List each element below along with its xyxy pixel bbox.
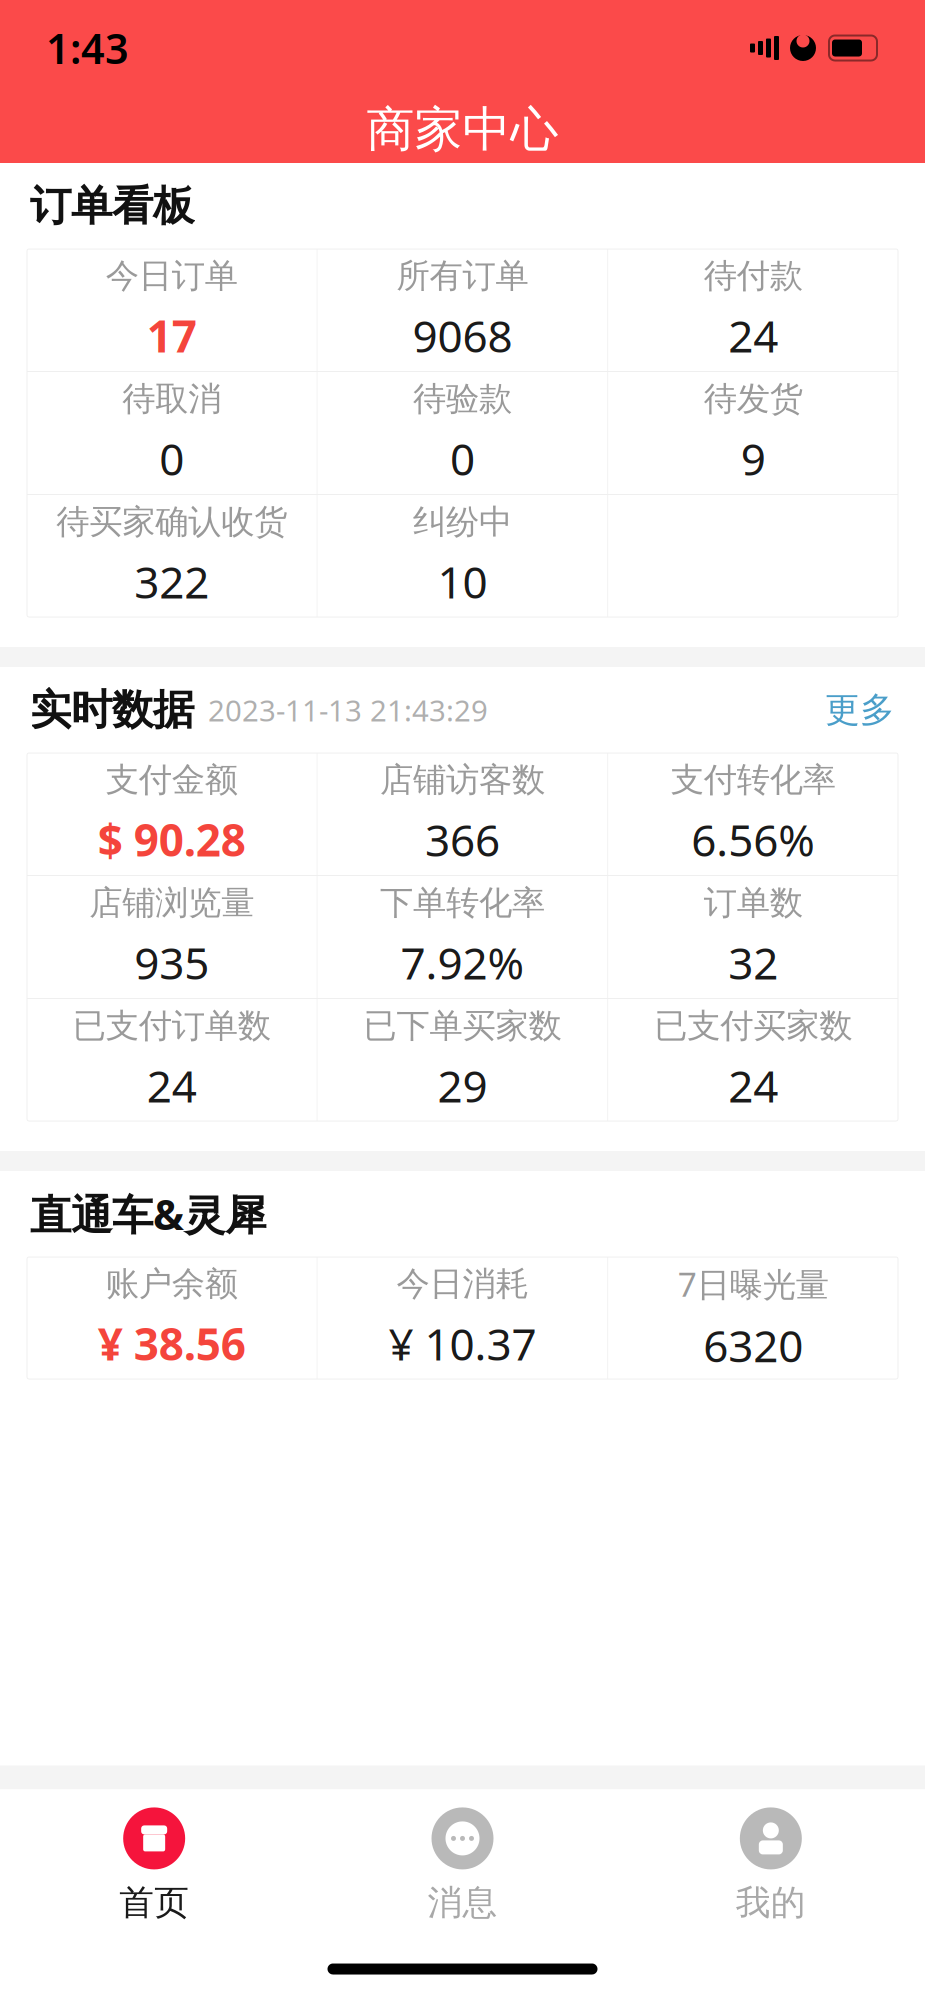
staticText: 10 [437, 552, 487, 611]
staticText: 已支付订单数 [73, 1005, 271, 1046]
button[interactable]: 已支付买家数 [608, 999, 898, 1121]
button[interactable]: 纠纷中 [318, 495, 607, 617]
staticText: 纠纷中 [413, 501, 512, 542]
staticText: 0 [450, 429, 475, 488]
staticText: $ 90.28 [98, 810, 246, 869]
staticText: 9 [741, 429, 766, 488]
button[interactable]: 我的 [617, 1789, 925, 1938]
button[interactable]: 今日消耗 [318, 1257, 607, 1379]
staticText: 订单看板 [30, 181, 194, 231]
button[interactable]: 7日曝光量 [608, 1257, 898, 1379]
staticText: 6320 [703, 1316, 803, 1374]
staticText: 直通车&灵犀 [30, 1187, 266, 1241]
staticText: ¥ 10.37 [388, 1314, 536, 1373]
staticText: 实时数据 [30, 685, 194, 735]
button[interactable]: 店铺浏览量 [27, 876, 317, 998]
button[interactable]: 更多 [825, 689, 895, 731]
button[interactable]: 下单转化率 [318, 876, 607, 998]
staticText: 24 [728, 1056, 778, 1115]
staticText: 今日消耗 [396, 1263, 528, 1304]
staticText: 0 [159, 429, 184, 488]
staticText: 366 [425, 810, 500, 869]
staticText: 已支付买家数 [654, 1005, 852, 1046]
staticText: 更多 [825, 689, 895, 731]
staticText: 待验款 [413, 378, 512, 419]
staticText: ¥ 38.56 [98, 1314, 246, 1373]
staticText: 账户余额 [106, 1263, 238, 1304]
button[interactable]: 待付款 [608, 249, 898, 371]
staticText: 17 [147, 306, 197, 365]
button[interactable]: 账户余额 [27, 1257, 317, 1379]
button[interactable]: 首页 [0, 1789, 308, 1938]
button[interactable]: 所有订单 [318, 249, 607, 371]
staticText: 322 [134, 552, 209, 611]
staticText: 店铺浏览量 [89, 882, 254, 923]
button[interactable]: 待买家确认收货 [27, 495, 317, 617]
staticText: 29 [437, 1056, 487, 1115]
staticText: 支付金额 [106, 759, 238, 800]
staticText: 所有订单 [396, 255, 528, 296]
staticText: 待付款 [704, 255, 803, 296]
button[interactable]: 订单数 [608, 876, 898, 998]
button[interactable]: 已支付订单数 [27, 999, 317, 1121]
staticText: 已下单买家数 [363, 1005, 561, 1046]
staticText: 消息 [427, 1881, 497, 1924]
button[interactable]: 待发货 [608, 372, 898, 494]
staticText: 待买家确认收货 [56, 501, 287, 542]
staticText: 2023-11-13 21:43:29 [208, 690, 488, 729]
button[interactable]: 支付转化率 [608, 753, 898, 875]
staticText: 支付转化率 [671, 759, 836, 800]
button[interactable]: 待取消 [27, 372, 317, 494]
button[interactable]: 店铺访客数 [318, 753, 607, 875]
staticText: 下单转化率 [380, 882, 545, 923]
staticText: 7日曝光量 [678, 1262, 829, 1306]
staticText: 6.56% [691, 810, 815, 869]
staticText: 32 [728, 933, 778, 992]
staticText: 商家中心 [366, 100, 558, 159]
staticText: 今日订单 [106, 255, 238, 296]
button[interactable]: 待验款 [318, 372, 607, 494]
button[interactable]: 已下单买家数 [318, 999, 607, 1121]
staticText: 待取消 [122, 378, 221, 419]
staticText: 待发货 [704, 378, 803, 419]
staticText: 店铺访客数 [380, 759, 545, 800]
staticText: 9068 [412, 306, 512, 365]
staticText: 我的 [736, 1881, 806, 1924]
staticText: 1:43 [46, 21, 129, 75]
staticText: 7.92% [400, 933, 524, 992]
staticText: 24 [147, 1056, 197, 1115]
staticText: 24 [728, 306, 778, 365]
button[interactable]: 消息 [308, 1789, 617, 1938]
button[interactable]: 今日订单 [27, 249, 317, 371]
staticText: 935 [134, 933, 209, 992]
button[interactable]: 支付金额 [27, 753, 317, 875]
staticText: 首页 [119, 1881, 189, 1924]
staticText: 订单数 [704, 882, 803, 923]
